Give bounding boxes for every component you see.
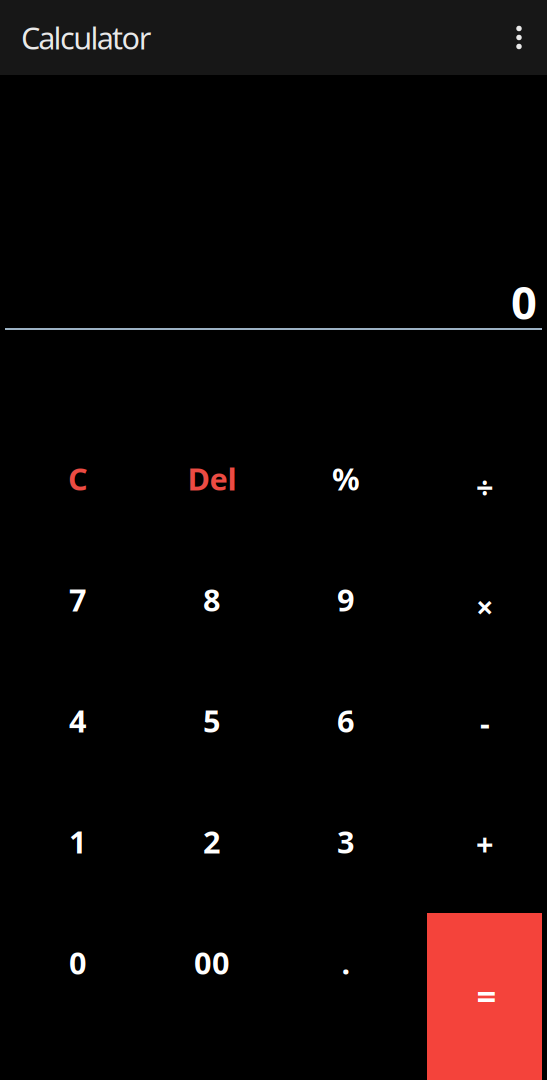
staticText: + — [476, 823, 494, 864]
staticText: 1 — [69, 821, 87, 862]
staticText: = — [476, 972, 496, 1018]
staticText: 0 — [511, 272, 537, 332]
staticText: 3 — [337, 821, 355, 862]
button[interactable]: 1 — [11, 781, 145, 902]
staticText: 5 — [203, 700, 221, 741]
button[interactable]: 9 — [279, 539, 413, 660]
button[interactable]: . — [279, 902, 413, 1023]
staticText: 8 — [203, 579, 221, 620]
button[interactable]: More options — [491, 0, 547, 75]
button[interactable]: 2 — [145, 781, 279, 902]
staticText: 7 — [69, 579, 87, 620]
button[interactable]: + — [413, 781, 547, 902]
button[interactable]: - — [413, 660, 547, 781]
staticText: - — [480, 702, 490, 743]
staticText: Del — [187, 458, 236, 499]
button[interactable]: 6 — [279, 660, 413, 781]
staticText: 0 — [69, 942, 87, 983]
button[interactable]: Del — [145, 418, 279, 539]
staticText: % — [332, 458, 360, 499]
button[interactable]: ÷ — [413, 418, 547, 539]
button[interactable]: × — [413, 539, 547, 660]
staticText: 2 — [203, 821, 221, 862]
button[interactable]: 00 — [145, 902, 279, 1023]
button[interactable]: % — [279, 418, 413, 539]
staticText: 00 — [194, 942, 230, 983]
button[interactable]: 4 — [11, 660, 145, 781]
staticText: ÷ — [476, 466, 494, 507]
button[interactable]: 7 — [11, 539, 145, 660]
button[interactable]: = — [427, 913, 542, 1080]
button[interactable]: 0 — [11, 902, 145, 1023]
button[interactable]: 8 — [145, 539, 279, 660]
button[interactable]: 5 — [145, 660, 279, 781]
staticText: 6 — [337, 700, 355, 741]
staticText: 9 — [337, 579, 355, 620]
button[interactable]: C — [11, 418, 145, 539]
staticText: . — [341, 942, 350, 983]
staticText: Calculator — [21, 17, 152, 58]
staticText: × — [476, 586, 494, 627]
button[interactable]: 3 — [279, 781, 413, 902]
staticText: C — [68, 458, 88, 499]
staticText: 4 — [69, 700, 87, 741]
